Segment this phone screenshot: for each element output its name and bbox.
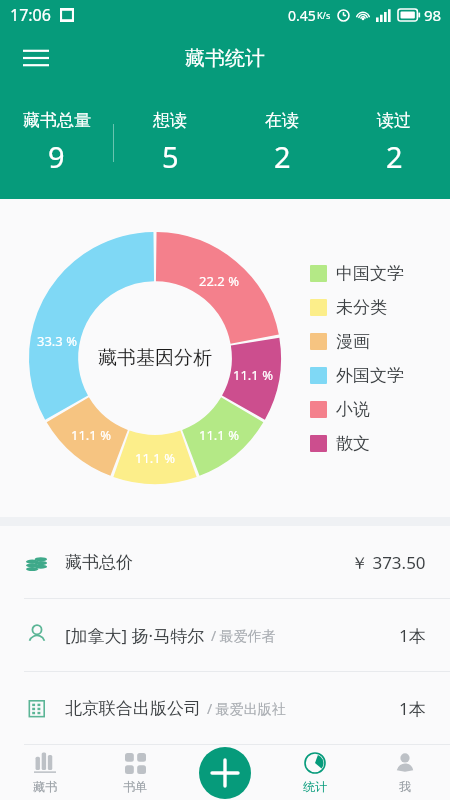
staticText: 在读 — [265, 110, 299, 131]
staticText: 小说 — [336, 399, 370, 420]
button[interactable]: 未分类 — [310, 297, 387, 318]
button[interactable]: 想读 — [114, 110, 226, 176]
staticText: / 最爱作者 — [211, 626, 276, 645]
button[interactable]: Menu — [14, 36, 58, 80]
staticText: 11.1 % — [199, 426, 239, 444]
staticText: 22.2 % — [199, 272, 239, 290]
staticText: 1本 — [399, 697, 426, 720]
staticText: / 最爱出版社 — [207, 699, 286, 718]
button[interactable]: 中国文学 — [310, 263, 404, 284]
staticText: K/s — [317, 9, 331, 21]
staticText: 北京联合出版公司 — [65, 698, 201, 719]
button[interactable]: 书单 — [90, 745, 180, 800]
staticText: [加拿大] 扬·马特尔 — [65, 624, 205, 647]
staticText: ￥ 373.50 — [351, 551, 426, 574]
button[interactable]: 北京联合出版公司 — [0, 672, 450, 744]
staticText: 我 — [399, 779, 411, 794]
staticText: 藏书基因分析 — [98, 346, 212, 370]
staticText: 藏书 — [33, 779, 57, 794]
staticText: 未分类 — [336, 297, 387, 318]
staticText: 藏书总价 — [65, 552, 133, 573]
button[interactable]: [加拿大] 扬·马特尔 — [0, 599, 450, 671]
button[interactable]: 藏书 — [0, 745, 90, 800]
button[interactable]: 读过 — [338, 110, 450, 176]
staticText: 11.1 % — [135, 449, 175, 467]
staticText: 书单 — [123, 779, 147, 794]
staticText: 1本 — [399, 624, 426, 647]
staticText: 统计 — [303, 779, 327, 794]
button[interactable]: 外国文学 — [310, 365, 404, 386]
staticText: 中国文学 — [336, 263, 404, 284]
button[interactable]: 藏书总价 — [0, 526, 450, 598]
button[interactable]: 藏书总量 — [0, 110, 113, 176]
button[interactable]: 散文 — [310, 433, 370, 454]
staticText: 0.45 — [288, 6, 316, 25]
staticText: 5 — [162, 137, 179, 176]
button[interactable]: 漫画 — [310, 331, 370, 352]
staticText: 11.1 % — [233, 366, 273, 384]
staticText: 漫画 — [336, 331, 370, 352]
staticText: 外国文学 — [336, 365, 404, 386]
staticText: 9 — [48, 137, 65, 176]
staticText: 33.3 % — [37, 332, 77, 350]
button[interactable]: 我 — [360, 745, 450, 800]
staticText: 98 — [424, 5, 442, 25]
staticText: 11.1 % — [71, 426, 111, 444]
button[interactable]: Add — [199, 747, 251, 799]
staticText: 读过 — [377, 110, 411, 131]
staticText: 想读 — [153, 110, 187, 131]
button[interactable]: 在读 — [226, 110, 338, 176]
staticText: 藏书统计 — [185, 46, 265, 71]
staticText: 散文 — [336, 433, 370, 454]
staticText: 2 — [274, 137, 291, 176]
staticText: 藏书总量 — [23, 110, 91, 131]
staticText: 2 — [386, 137, 403, 176]
button[interactable]: 小说 — [310, 399, 370, 420]
staticText: 17:06 — [10, 4, 51, 26]
button[interactable]: 统计 — [270, 745, 360, 800]
